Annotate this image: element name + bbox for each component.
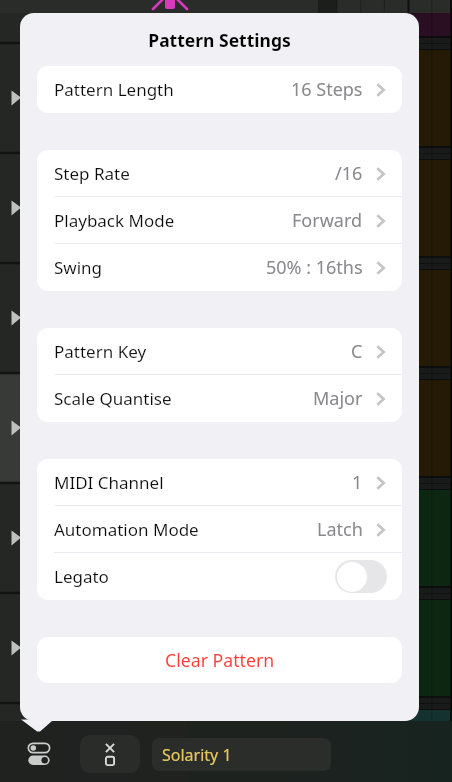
button[interactable]: Automation Mode bbox=[37, 506, 402, 553]
staticText: Forward bbox=[292, 208, 363, 233]
staticText: 50% : 16ths bbox=[266, 255, 363, 280]
button[interactable]: Pattern Length bbox=[37, 66, 402, 113]
button[interactable]: Step Rate bbox=[37, 150, 402, 197]
staticText: MIDI Channel bbox=[54, 471, 164, 494]
staticText: Pattern Settings bbox=[20, 28, 419, 52]
button[interactable]: Solarity 1 bbox=[152, 738, 331, 771]
staticText: Clear Pattern bbox=[165, 648, 275, 672]
button[interactable]: Pattern settings bbox=[18, 735, 60, 773]
staticText: Swing bbox=[54, 256, 103, 279]
staticText: Solarity 1 bbox=[162, 744, 232, 766]
staticText: Automation Mode bbox=[54, 518, 199, 541]
staticText: Major bbox=[313, 386, 363, 411]
button[interactable]: Scale Quantise bbox=[37, 375, 402, 422]
staticText: Playback Mode bbox=[54, 209, 175, 232]
staticText: Latch bbox=[317, 517, 363, 542]
staticText: C bbox=[351, 339, 363, 364]
button[interactable]: Pattern Key bbox=[37, 328, 402, 375]
button[interactable]: Clear Pattern bbox=[37, 637, 402, 683]
staticText: Step Rate bbox=[54, 162, 130, 185]
button[interactable]: MIDI Channel bbox=[37, 459, 402, 506]
staticText: Pattern Key bbox=[54, 340, 147, 363]
button[interactable]: Playback Mode bbox=[37, 197, 402, 244]
staticText: 1 bbox=[352, 470, 363, 495]
button[interactable]: Swing bbox=[37, 244, 402, 291]
staticText: Scale Quantise bbox=[54, 387, 172, 410]
staticText: 16 Steps bbox=[291, 77, 363, 102]
staticText: Legato bbox=[54, 565, 109, 588]
button[interactable]: Legato bbox=[37, 553, 402, 600]
staticText: /16 bbox=[335, 161, 363, 186]
button[interactable]: Clear steps bbox=[80, 735, 140, 773]
staticText: Pattern Length bbox=[54, 78, 174, 101]
